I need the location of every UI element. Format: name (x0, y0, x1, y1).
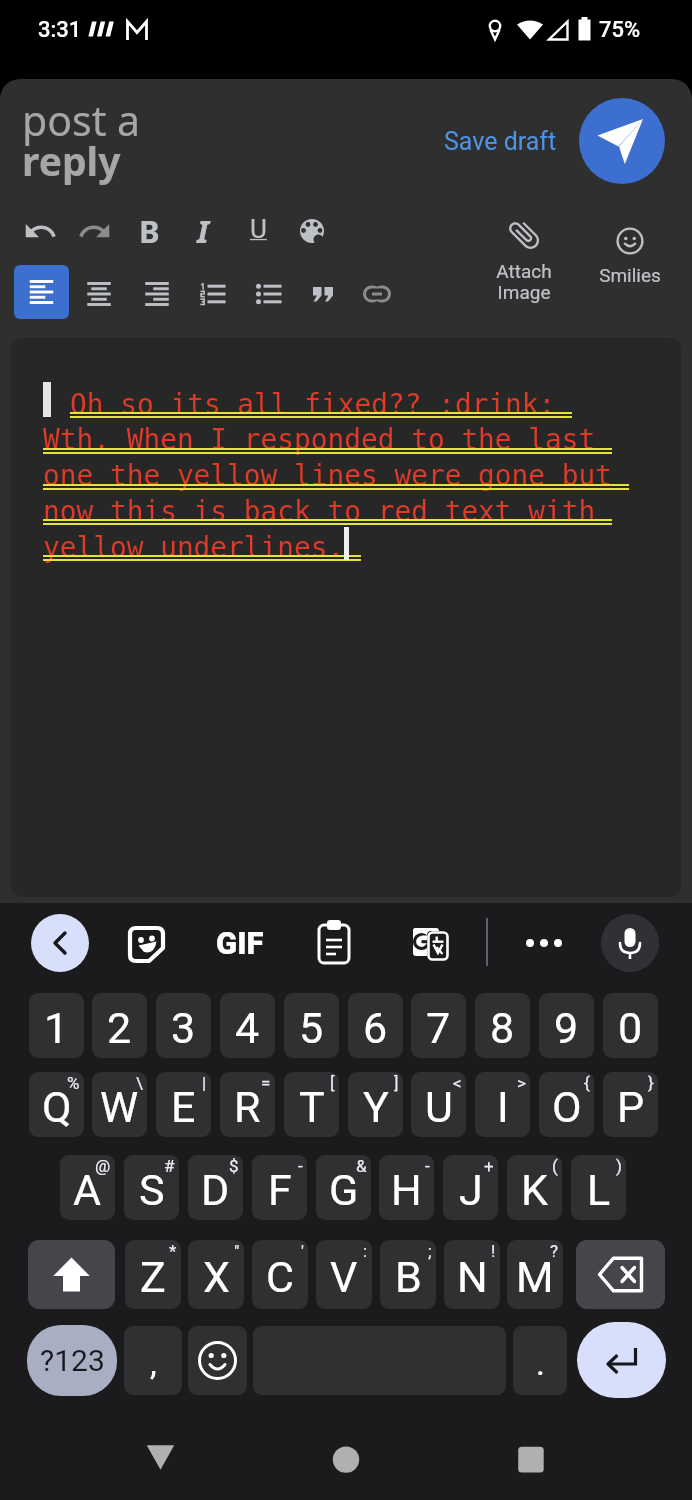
button[interactable]: 6 (348, 993, 403, 1058)
button[interactable]: . (513, 1326, 567, 1395)
button[interactable]: Numbered list (187, 268, 239, 320)
button[interactable]: Translate (402, 917, 454, 969)
button[interactable]: ?123 (27, 1325, 117, 1396)
staticText: I (497, 1082, 509, 1132)
staticText: ? (550, 1241, 559, 1261)
button[interactable]: Home (316, 1430, 377, 1491)
staticText: % (67, 1073, 80, 1093)
button[interactable]: Align right (131, 268, 183, 320)
button[interactable]: Smilies (572, 216, 688, 306)
button[interactable]: U (411, 1072, 466, 1137)
button[interactable]: Oh so its all fixed?? :drink: (11, 338, 681, 897)
button[interactable]: Save draft (444, 120, 562, 162)
button[interactable]: D (188, 1155, 243, 1220)
staticText: 75% (599, 17, 641, 43)
button[interactable]: F (252, 1155, 307, 1220)
staticText: 6 (363, 1003, 388, 1053)
button[interactable]: Shift (28, 1240, 115, 1309)
button[interactable]: B (123, 205, 175, 257)
staticText: & (356, 1156, 367, 1176)
button[interactable]: 8 (475, 993, 530, 1058)
button[interactable]: 9 (539, 993, 594, 1058)
button[interactable]: S (124, 1155, 179, 1220)
staticText: Q (42, 1082, 72, 1132)
button[interactable]: GIF (211, 917, 269, 969)
staticText: @ (95, 1156, 111, 1176)
button[interactable]: Send reply (579, 98, 665, 184)
button[interactable]: Stickers (120, 917, 172, 969)
button[interactable]: O (539, 1072, 594, 1137)
staticText: ; (428, 1241, 432, 1261)
button[interactable]: T (284, 1072, 339, 1137)
button[interactable]: N (444, 1240, 500, 1309)
button[interactable]: J (443, 1155, 498, 1220)
staticText: E (171, 1082, 196, 1132)
staticText: reply (22, 134, 121, 187)
staticText: R (234, 1082, 261, 1132)
button[interactable]: Quote (297, 268, 349, 320)
button[interactable]: Q (29, 1072, 84, 1137)
button[interactable]: More options (518, 917, 570, 969)
button[interactable]: Clipboard (308, 917, 360, 969)
button[interactable]: Text colour (286, 205, 338, 257)
button[interactable]: 4 (220, 993, 275, 1058)
staticText: ( (552, 1156, 558, 1176)
button[interactable]: X (188, 1240, 244, 1309)
button[interactable]: Back (130, 1430, 191, 1491)
staticText: L (587, 1165, 611, 1215)
button[interactable]: I (177, 205, 229, 257)
staticText: : (363, 1241, 368, 1261)
button[interactable]: P (603, 1072, 658, 1137)
button[interactable]: Align left (14, 265, 69, 319)
button[interactable]: 3 (156, 993, 211, 1058)
button[interactable]: C (252, 1240, 308, 1309)
button[interactable]: Insert link (351, 268, 403, 320)
button[interactable]: 7 (411, 993, 466, 1058)
button[interactable]: H (379, 1155, 434, 1220)
button[interactable]: 1 (29, 993, 84, 1058)
staticText: A (73, 1165, 102, 1215)
button[interactable]: Align center (73, 268, 125, 320)
button[interactable]: Enter (577, 1322, 666, 1398)
button[interactable]: E (156, 1072, 211, 1137)
button[interactable]: Bulleted list (243, 268, 295, 320)
staticText: C (266, 1252, 294, 1302)
staticText: ] (394, 1073, 399, 1093)
staticText: | (202, 1073, 207, 1093)
staticText: Attach Image (466, 260, 582, 304)
button[interactable]: Back (31, 914, 89, 972)
button[interactable]: Emoji (188, 1326, 247, 1395)
button[interactable]: 0 (603, 993, 658, 1058)
button[interactable]: W (92, 1072, 147, 1137)
button[interactable]: 5 (284, 993, 339, 1058)
button[interactable]: A (60, 1155, 115, 1220)
button[interactable]: U (232, 205, 284, 257)
staticText: , (150, 1343, 157, 1383)
button[interactable]: Undo (14, 205, 66, 257)
staticText: ! (491, 1241, 496, 1261)
button[interactable]: M (507, 1240, 563, 1309)
button[interactable]: K (507, 1155, 562, 1220)
button[interactable]: Z (125, 1240, 181, 1309)
staticText: 2 (107, 1003, 132, 1053)
staticText: F (268, 1165, 292, 1215)
staticText: 3:31 (38, 17, 82, 43)
button[interactable]: Voice input (601, 914, 659, 972)
staticText: = (261, 1073, 271, 1093)
button[interactable]: V (316, 1240, 372, 1309)
button[interactable]: I (475, 1072, 530, 1137)
staticText: 3 (171, 1003, 196, 1053)
button[interactable]: Y (348, 1072, 403, 1137)
button[interactable]: 2 (92, 993, 147, 1058)
button[interactable]: R (220, 1072, 275, 1137)
button[interactable]: Redo (69, 205, 121, 257)
button[interactable]: B (380, 1240, 436, 1309)
button[interactable]: G (316, 1155, 371, 1220)
button[interactable]: L (571, 1155, 626, 1220)
staticText: " (234, 1241, 240, 1261)
button[interactable]: , (124, 1326, 182, 1395)
button[interactable]: Backspace (576, 1240, 665, 1309)
button[interactable]: Recents (501, 1430, 562, 1491)
button[interactable]: Attach Image (466, 216, 582, 306)
